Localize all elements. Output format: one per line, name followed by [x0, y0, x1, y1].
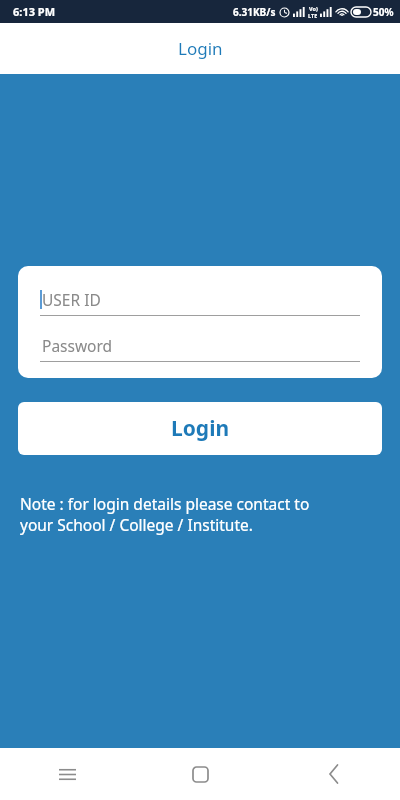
button[interactable]: Login — [18, 402, 382, 455]
button[interactable]: Back — [267, 748, 400, 800]
staticText: USER ID — [42, 289, 101, 310]
staticText: Password — [42, 335, 113, 356]
staticText: 50% — [373, 5, 394, 19]
staticText: Login — [178, 37, 223, 60]
staticText: 6.31KB/s — [233, 5, 276, 19]
staticText: 6:13 PM — [13, 4, 56, 19]
staticText: Login — [171, 414, 230, 443]
button[interactable]: Password — [40, 328, 360, 362]
button[interactable]: Recents — [0, 748, 134, 800]
button[interactable]: USER ID — [40, 282, 360, 316]
staticText: Vo) — [309, 5, 318, 12]
staticText: Note : for login details please contact … — [20, 493, 310, 536]
staticText: LTE — [308, 12, 318, 19]
button[interactable]: Home — [134, 748, 267, 800]
